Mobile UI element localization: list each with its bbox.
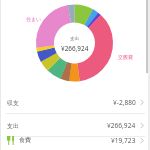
staticText: ¥19,723 — [111, 136, 136, 145]
button[interactable]: 支出 — [0, 115, 150, 136]
staticText: 支出 — [70, 36, 80, 42]
staticText: 収支 — [7, 99, 19, 107]
staticText: ¥-2,880 — [113, 98, 136, 107]
staticText: 支出 — [7, 122, 19, 130]
staticText: ¥266,924 — [107, 121, 136, 130]
staticText: 住まい — [26, 16, 42, 22]
staticText: 食費 — [19, 136, 31, 144]
button[interactable]: 収支 — [0, 92, 150, 113]
staticText: 交際費 — [118, 54, 133, 60]
staticText: ¥266,924 — [61, 44, 89, 53]
button[interactable]: 食費 — [0, 132, 150, 148]
